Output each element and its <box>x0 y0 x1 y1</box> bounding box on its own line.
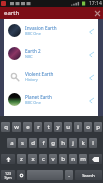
button[interactable]: o <box>84 122 92 132</box>
button[interactable]: Planet Earth <box>4 88 98 111</box>
staticText: Search <box>82 173 95 178</box>
staticText: x <box>31 155 35 163</box>
button[interactable]: k <box>79 138 87 148</box>
button[interactable]: Earth 2 <box>4 42 98 65</box>
staticText: k <box>81 139 85 147</box>
button[interactable]: gear <box>17 170 25 180</box>
button[interactable]: g <box>49 138 57 148</box>
button[interactable]: w <box>12 122 21 132</box>
button[interactable]: m <box>79 154 87 164</box>
button[interactable]: Insert suggestion <box>85 94 97 106</box>
button[interactable]: y <box>54 122 62 132</box>
staticText: earth <box>4 9 20 17</box>
button[interactable]: f <box>39 138 47 148</box>
button[interactable]: p <box>94 122 102 132</box>
staticText: History <box>25 77 38 82</box>
staticText: f <box>42 139 45 147</box>
staticText: c <box>42 155 45 163</box>
button[interactable]: x <box>28 154 37 164</box>
staticText: i <box>77 123 79 131</box>
button[interactable]: del <box>89 154 102 164</box>
button[interactable]: . <box>65 170 73 180</box>
staticText: NBC <box>25 54 33 59</box>
staticText: w <box>14 123 19 131</box>
staticText: Planet Earth <box>25 94 52 100</box>
staticText: t <box>47 123 50 131</box>
button[interactable]: u <box>64 122 72 132</box>
staticText: m <box>80 155 86 163</box>
button[interactable]: Insert suggestion <box>85 48 97 60</box>
staticText: y <box>56 123 60 131</box>
button[interactable]: b <box>59 154 67 164</box>
button[interactable]: j <box>69 138 77 148</box>
button[interactable]: search <box>75 170 102 180</box>
button[interactable]: Insert suggestion <box>85 71 97 83</box>
button[interactable]: shift <box>1 154 15 164</box>
staticText: 17:14 <box>89 0 102 7</box>
button[interactable]: d <box>29 138 37 148</box>
staticText: q <box>4 123 8 131</box>
staticText: Invasion Earth <box>25 25 57 31</box>
button[interactable]: Insert suggestion <box>85 25 97 37</box>
button[interactable]: v <box>49 154 57 164</box>
button[interactable]: Invasion Earth <box>4 19 98 42</box>
staticText: u <box>66 123 70 131</box>
staticText: z <box>20 155 23 163</box>
button[interactable]: e <box>23 122 32 132</box>
staticText: o <box>86 123 90 131</box>
button[interactable]: Violent Earth <box>4 65 98 88</box>
staticText: v <box>51 155 55 163</box>
staticText: l <box>92 139 94 147</box>
staticText: Earth 2 <box>25 48 41 54</box>
button[interactable]: s <box>18 138 27 148</box>
button[interactable]: a <box>7 138 16 148</box>
staticText: r <box>37 123 40 131</box>
button[interactable]: Clear search <box>91 7 103 19</box>
staticText: n <box>71 155 75 163</box>
button[interactable]: q <box>1 122 10 132</box>
staticText: . <box>68 171 70 179</box>
button[interactable]: r <box>34 122 42 132</box>
staticText: a <box>10 139 14 147</box>
button[interactable]: sym <box>1 170 15 180</box>
staticText: j <box>72 139 74 147</box>
staticText: h <box>61 139 65 147</box>
staticText: d <box>31 139 35 147</box>
button[interactable]: l <box>89 138 97 148</box>
staticText: BBC One <box>25 31 41 36</box>
button[interactable]: h <box>59 138 67 148</box>
button[interactable]: z <box>17 154 26 164</box>
button[interactable] <box>27 170 63 180</box>
staticText: e <box>26 123 30 131</box>
staticText: BBC One <box>25 100 41 105</box>
staticText: 123 Sym <box>4 171 12 180</box>
staticText: Violent Earth <box>25 71 54 77</box>
staticText: s <box>21 139 24 147</box>
button[interactable]: c <box>39 154 47 164</box>
staticText: b <box>61 155 65 163</box>
staticText: g <box>51 139 55 147</box>
button[interactable]: t <box>44 122 52 132</box>
button[interactable]: i <box>74 122 82 132</box>
button[interactable]: n <box>69 154 77 164</box>
staticText: p <box>96 123 100 131</box>
